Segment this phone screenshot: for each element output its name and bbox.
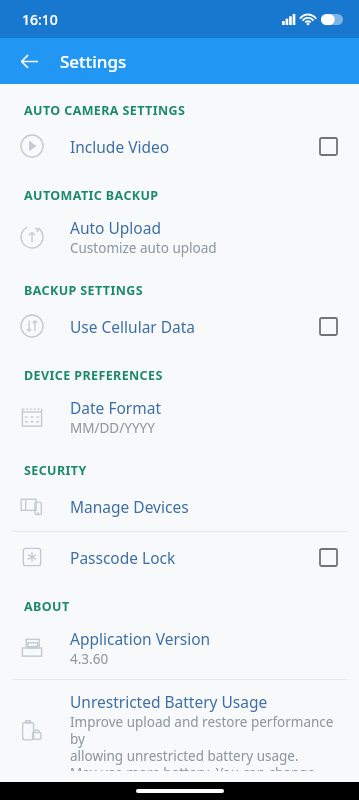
staticText: Passcode Lock [70, 547, 176, 568]
staticText: AUTOMATIC BACKUP [24, 187, 159, 204]
staticText: Manage Devices [70, 496, 189, 517]
staticText: Customize auto upload [70, 239, 217, 257]
button[interactable]: Auto Upload [0, 206, 359, 268]
button[interactable]: Passcode Lock [0, 532, 359, 582]
staticText: Date Format [70, 397, 161, 418]
staticText: Application Version [70, 628, 211, 649]
staticText: Unrestricted Battery Usage [70, 691, 268, 712]
button[interactable]: Date Format [0, 386, 359, 448]
staticText: Include Video [70, 136, 170, 157]
button[interactable]: Use Cellular Data checkbox [315, 313, 341, 339]
staticText: Auto Upload [70, 217, 161, 238]
button[interactable]: Include Video [0, 121, 359, 171]
button[interactable]: Use Cellular Data [0, 301, 359, 351]
button[interactable]: Passcode Lock checkbox [315, 544, 341, 570]
staticText: MM/DD/YYYY [70, 419, 155, 437]
staticText: ABOUT [24, 598, 70, 615]
staticText: 16:10 [22, 10, 58, 29]
staticText: AUTO CAMERA SETTINGS [24, 102, 186, 119]
button[interactable]: Unrestricted Battery Usage [0, 680, 359, 782]
staticText: Settings [60, 50, 127, 73]
button[interactable]: Include Video checkbox [315, 133, 341, 159]
staticText: 4.3.60 [70, 650, 109, 668]
staticText: Use Cellular Data [70, 316, 196, 337]
button[interactable]: Application Version [0, 617, 359, 679]
staticText: Improve upload and restore performance b… [70, 713, 341, 771]
button[interactable]: Manage Devices [0, 481, 359, 531]
staticText: BACKUP SETTINGS [24, 282, 144, 299]
staticText: SECURITY [24, 462, 87, 479]
staticText: DEVICE PREFERENCES [24, 367, 163, 384]
button[interactable]: Back [10, 42, 48, 80]
